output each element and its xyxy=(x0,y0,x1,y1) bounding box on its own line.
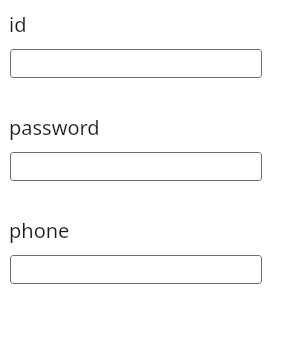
button[interactable]: id input field xyxy=(10,49,262,78)
staticText: phone xyxy=(9,217,70,244)
staticText: id xyxy=(9,11,27,38)
button[interactable]: password input field xyxy=(10,152,262,181)
button[interactable]: phone input field xyxy=(10,255,262,284)
staticText: password xyxy=(9,114,100,141)
